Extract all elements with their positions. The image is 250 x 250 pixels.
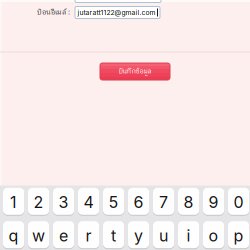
staticText: i — [187, 226, 191, 245]
button[interactable]: 6 — [128, 187, 149, 215]
button[interactable]: 3 — [53, 187, 74, 215]
staticText: u — [159, 226, 168, 245]
button[interactable]: บันทึกข้อมูล — [100, 63, 170, 80]
staticText: ป้อนอีเมล์ : — [37, 7, 70, 18]
staticText: w — [32, 226, 45, 245]
button[interactable]: e — [53, 221, 74, 249]
button[interactable]: w — [28, 221, 49, 249]
button[interactable]: o — [203, 221, 224, 249]
button[interactable]: p — [228, 221, 249, 249]
button[interactable]: t — [103, 221, 124, 249]
button[interactable]: 9 — [203, 187, 224, 215]
staticText: 2 — [34, 193, 44, 212]
staticText: บันทึกข้อมูล — [118, 66, 151, 77]
staticText: p — [234, 226, 244, 245]
staticText: jutaratt1122@gmail.com — [77, 8, 155, 17]
button[interactable]: 8 — [178, 187, 199, 215]
button[interactable]: 1 — [3, 187, 24, 215]
staticText: q — [9, 226, 19, 245]
button[interactable]: 7 — [153, 187, 174, 215]
staticText: 8 — [184, 193, 194, 212]
button[interactable]: 0 — [228, 187, 249, 215]
staticText: 9 — [209, 193, 219, 212]
button[interactable]: 2 — [28, 187, 49, 215]
button[interactable]: y — [128, 221, 149, 249]
staticText: 6 — [134, 193, 144, 212]
button[interactable]: 4 — [78, 187, 99, 215]
staticText: o — [209, 226, 219, 245]
staticText: 7 — [159, 193, 168, 212]
staticText: 0 — [234, 193, 244, 212]
button[interactable]: r — [78, 221, 99, 249]
button[interactable]: 5 — [103, 187, 124, 215]
staticText: t — [111, 226, 116, 245]
staticText: e — [59, 226, 68, 245]
button[interactable]: i — [178, 221, 199, 249]
staticText: r — [86, 226, 92, 245]
staticText: 3 — [59, 193, 69, 212]
button[interactable]: q — [3, 221, 24, 249]
staticText: 5 — [109, 193, 119, 212]
staticText: 4 — [84, 193, 94, 212]
staticText: y — [134, 226, 143, 245]
button[interactable]: u — [153, 221, 174, 249]
staticText: 1 — [10, 193, 17, 212]
